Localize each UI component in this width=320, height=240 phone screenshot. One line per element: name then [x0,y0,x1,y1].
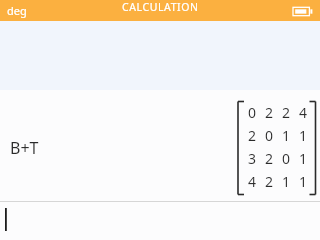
staticText: 2 [248,126,257,145]
staticText: deg [7,3,27,18]
staticText: 2 [265,172,274,191]
staticText: 1 [299,149,308,168]
button[interactable]: deg [0,3,33,18]
staticText: CALCULATION [122,0,199,14]
staticText: 1 [299,172,308,191]
staticText: 0 [248,103,257,122]
staticText: 1 [282,172,291,191]
staticText: 2 [265,103,274,122]
staticText: 0 [265,126,274,145]
button[interactable]: Battery status [292,4,320,18]
staticText: 2 [265,149,274,168]
staticText: 4 [248,172,257,191]
staticText: 2 [282,103,291,122]
button[interactable]: Expression input [0,202,320,240]
staticText: 4 [299,103,308,122]
staticText: 1 [282,126,291,145]
staticText: 0 [282,149,291,168]
button[interactable]: B+T [0,90,320,201]
staticText: B+T [10,137,39,159]
staticText: 3 [248,149,257,168]
staticText: 1 [299,126,308,145]
